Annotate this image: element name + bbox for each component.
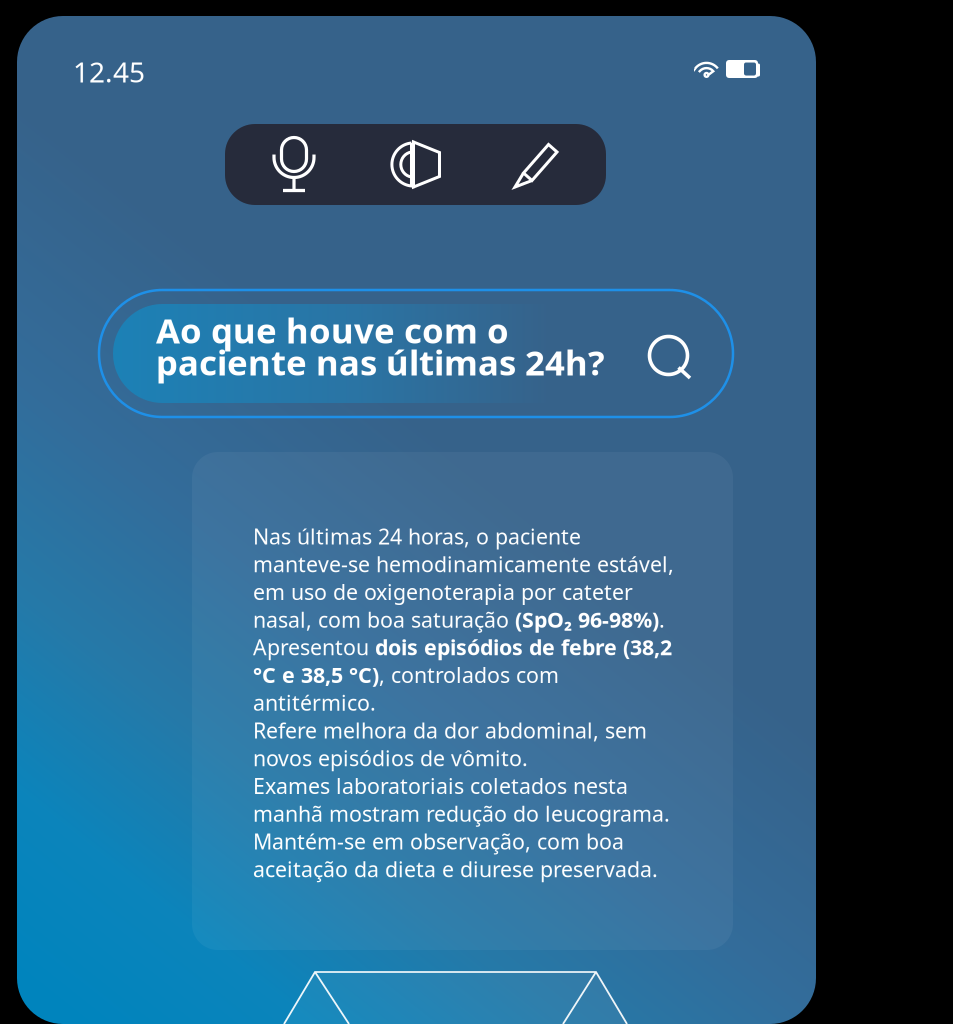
button[interactable]: Ao que houve com o paciente nas últimas … [99, 290, 733, 417]
staticText: Ao que houve com o paciente nas últimas … [156, 307, 605, 385]
button[interactable] [225, 124, 606, 205]
button[interactable]: Microphone [270, 135, 318, 193]
button[interactable]: Speaker [387, 140, 443, 188]
button[interactable]: Edit [513, 139, 561, 189]
staticText: Nas últimas 24 horas, o paciente manteve… [253, 522, 674, 883]
staticText: 12.45 [73, 53, 145, 90]
